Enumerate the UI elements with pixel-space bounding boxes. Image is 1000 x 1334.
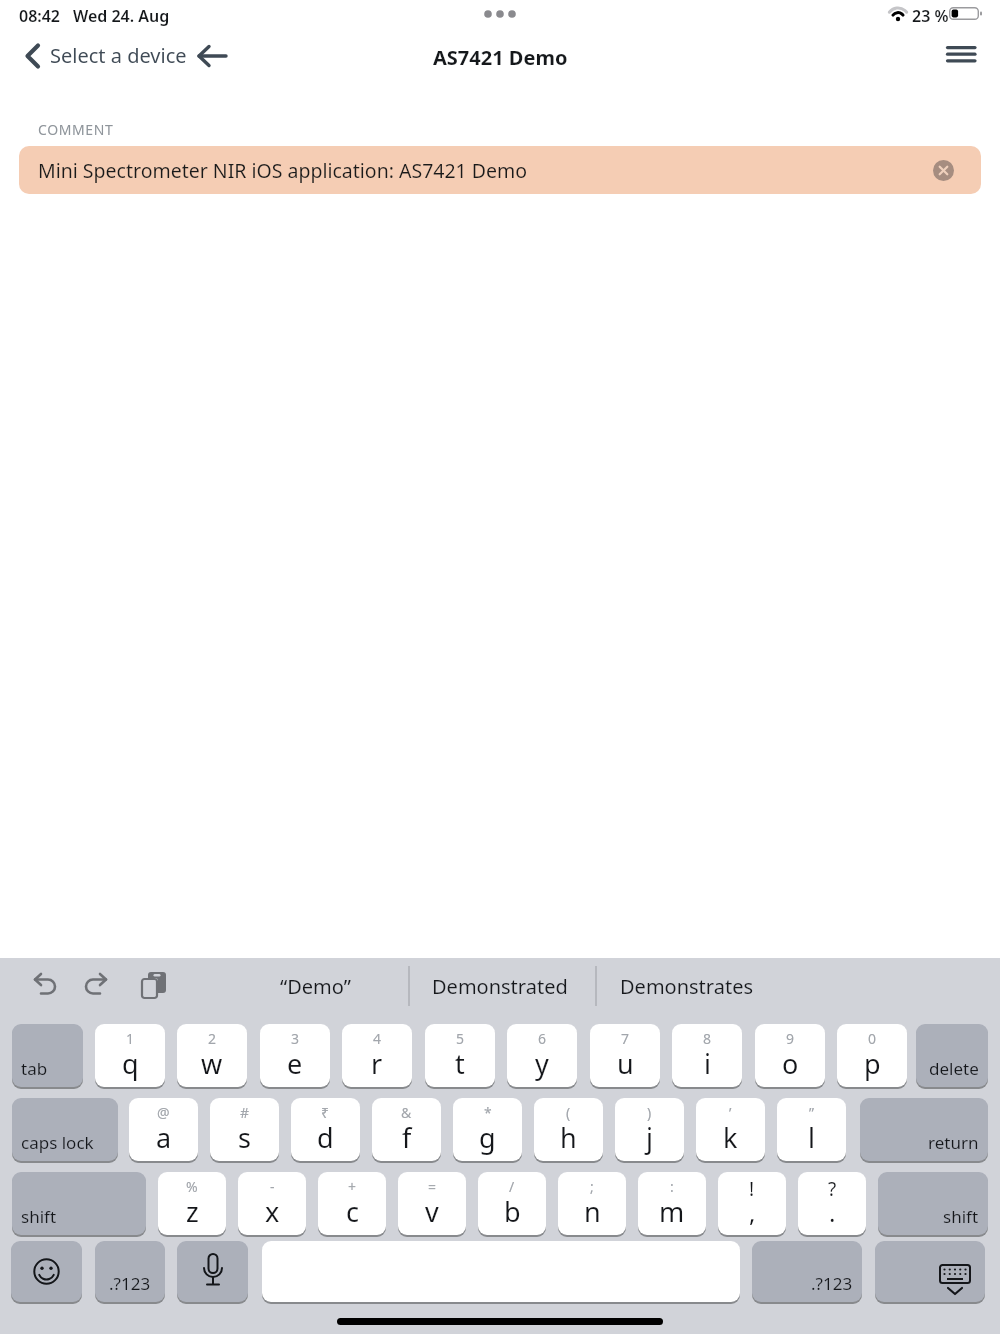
button[interactable]: caps lock bbox=[12, 1098, 118, 1161]
staticText: s bbox=[238, 1119, 251, 1156]
button[interactable]: shift bbox=[878, 1172, 988, 1235]
button[interactable]: 4 bbox=[342, 1024, 412, 1087]
button[interactable]: 5 bbox=[425, 1024, 495, 1087]
staticText: l bbox=[808, 1119, 815, 1156]
staticText: e bbox=[287, 1045, 303, 1082]
button[interactable]: ; bbox=[558, 1172, 626, 1235]
staticText: p bbox=[864, 1045, 881, 1082]
staticText: y bbox=[535, 1045, 549, 1082]
staticText: return bbox=[928, 1131, 979, 1154]
button[interactable] bbox=[133, 966, 173, 1006]
staticText: 3 bbox=[291, 1029, 300, 1048]
staticText: m bbox=[659, 1193, 685, 1230]
button[interactable]: Demonstrates bbox=[576, 964, 796, 1008]
staticText: 08:42 bbox=[19, 5, 61, 27]
staticText: & bbox=[401, 1103, 412, 1122]
button[interactable]: 1 bbox=[95, 1024, 165, 1087]
button[interactable]: tab bbox=[12, 1024, 83, 1087]
button[interactable]: ! bbox=[718, 1172, 786, 1235]
staticText: 9 bbox=[786, 1029, 795, 1048]
staticText: - bbox=[270, 1177, 275, 1196]
button[interactable]: + bbox=[318, 1172, 386, 1235]
staticText: 7 bbox=[621, 1029, 630, 1048]
button[interactable]: Select a device bbox=[18, 38, 234, 74]
staticText: # bbox=[240, 1103, 250, 1122]
staticText: 1 bbox=[126, 1029, 135, 1048]
button[interactable]: ’ bbox=[696, 1098, 765, 1161]
button[interactable] bbox=[940, 40, 984, 70]
button[interactable] bbox=[11, 1241, 82, 1302]
button[interactable]: 2 bbox=[177, 1024, 247, 1087]
button[interactable]: ( bbox=[534, 1098, 603, 1161]
staticText: 2 bbox=[208, 1029, 217, 1048]
button[interactable]: @ bbox=[129, 1098, 198, 1161]
staticText: tab bbox=[21, 1057, 48, 1080]
staticText: % bbox=[186, 1177, 198, 1196]
staticText: o bbox=[782, 1045, 799, 1082]
staticText: i bbox=[704, 1045, 711, 1082]
button[interactable] bbox=[933, 160, 954, 181]
button[interactable]: % bbox=[158, 1172, 226, 1235]
staticText: .?123 bbox=[109, 1272, 151, 1295]
staticText: 4 bbox=[373, 1029, 382, 1048]
button[interactable]: 3 bbox=[260, 1024, 330, 1087]
staticText: Wed 24. Aug bbox=[73, 5, 170, 27]
button[interactable]: 8 bbox=[672, 1024, 742, 1087]
staticText: . bbox=[829, 1196, 836, 1229]
button[interactable]: 0 bbox=[837, 1024, 907, 1087]
button[interactable]: 9 bbox=[755, 1024, 825, 1087]
button[interactable]: Mini Spectrometer NIR iOS application: A… bbox=[19, 146, 981, 194]
button[interactable]: shift bbox=[12, 1172, 146, 1235]
staticText: ₹ bbox=[321, 1103, 330, 1122]
button[interactable] bbox=[262, 1241, 740, 1302]
button[interactable]: / bbox=[478, 1172, 546, 1235]
button[interactable] bbox=[24, 966, 64, 1006]
staticText: Demonstrates bbox=[620, 973, 753, 1000]
button[interactable]: - bbox=[238, 1172, 306, 1235]
button[interactable]: delete bbox=[916, 1024, 988, 1087]
button[interactable]: ? bbox=[798, 1172, 866, 1235]
staticText: * bbox=[484, 1103, 492, 1122]
staticText: @ bbox=[157, 1103, 170, 1122]
staticText: caps lock bbox=[21, 1131, 94, 1154]
button[interactable]: 6 bbox=[507, 1024, 577, 1087]
button[interactable]: ” bbox=[777, 1098, 846, 1161]
button[interactable]: = bbox=[398, 1172, 466, 1235]
staticText: shift bbox=[21, 1205, 57, 1228]
staticText: j bbox=[646, 1119, 653, 1156]
staticText: ( bbox=[566, 1103, 571, 1122]
button[interactable]: ₹ bbox=[291, 1098, 360, 1161]
staticText: Demonstrated bbox=[432, 973, 568, 1000]
button[interactable]: Demonstrated bbox=[390, 964, 610, 1008]
staticText: h bbox=[560, 1119, 577, 1156]
staticText: n bbox=[584, 1193, 601, 1230]
staticText: delete bbox=[929, 1057, 979, 1080]
button[interactable]: .?123 bbox=[95, 1241, 165, 1302]
staticText: w bbox=[201, 1045, 223, 1082]
staticText: q bbox=[122, 1045, 139, 1082]
staticText: 0 bbox=[868, 1029, 877, 1048]
button[interactable]: # bbox=[210, 1098, 279, 1161]
staticText: shift bbox=[943, 1205, 979, 1228]
button[interactable]: .?123 bbox=[752, 1241, 862, 1302]
staticText: g bbox=[479, 1119, 496, 1156]
staticText: k bbox=[723, 1119, 738, 1156]
staticText: ” bbox=[809, 1103, 815, 1122]
button[interactable] bbox=[875, 1241, 985, 1302]
staticText: ? bbox=[828, 1176, 837, 1202]
button[interactable]: return bbox=[860, 1098, 988, 1161]
staticText: c bbox=[346, 1193, 359, 1230]
staticText: ’ bbox=[729, 1103, 732, 1122]
button[interactable]: * bbox=[453, 1098, 522, 1161]
button[interactable] bbox=[77, 966, 117, 1006]
button[interactable] bbox=[177, 1241, 248, 1302]
staticText: d bbox=[317, 1119, 334, 1156]
button[interactable]: 7 bbox=[590, 1024, 660, 1087]
staticText: 6 bbox=[538, 1029, 547, 1048]
button[interactable]: : bbox=[638, 1172, 706, 1235]
staticText: v bbox=[425, 1193, 439, 1230]
button[interactable]: ) bbox=[615, 1098, 684, 1161]
staticText: AS7421 Demo bbox=[433, 44, 568, 71]
button[interactable]: “Demo” bbox=[205, 964, 425, 1008]
button[interactable]: & bbox=[372, 1098, 441, 1161]
